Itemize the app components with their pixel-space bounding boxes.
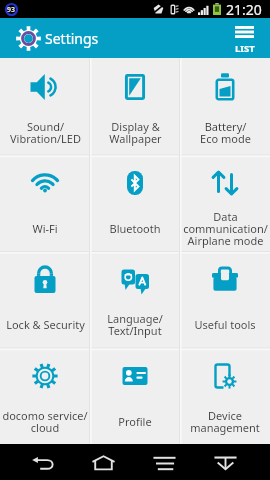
- button[interactable]: Display & Wallpaper: [90, 58, 180, 154]
- staticText: docomo service/ cloud: [2, 408, 88, 435]
- button[interactable]: Home: [73, 444, 134, 480]
- staticText: Settings: [45, 29, 99, 48]
- staticText: Language/ Text/Input: [107, 311, 163, 338]
- button[interactable]: Lock & Security: [0, 250, 90, 347]
- staticText: Sound/ Vibration/LED: [10, 119, 81, 146]
- button[interactable]: docomo service/ cloud: [0, 347, 90, 444]
- button[interactable]: Bluetooth: [90, 154, 180, 250]
- staticText: Lock & Security: [6, 317, 85, 332]
- button[interactable]: Settings: [16, 18, 99, 58]
- staticText: Data communication/ Airplane mode: [183, 209, 268, 248]
- staticText: Display & Wallpaper: [109, 119, 162, 146]
- button[interactable]: Language/ Text/Input: [90, 250, 180, 347]
- staticText: Wi-Fi: [32, 221, 58, 236]
- staticText: Battery/ Eco mode: [200, 119, 251, 146]
- button[interactable]: Recent apps: [134, 444, 195, 480]
- button[interactable]: Wi-Fi: [0, 154, 90, 250]
- button[interactable]: Sound/ Vibration/LED: [0, 58, 90, 154]
- button[interactable]: Profile: [90, 347, 180, 444]
- button[interactable]: Device management: [180, 347, 270, 444]
- button[interactable]: List view: [222, 23, 267, 58]
- staticText: Useful tools: [194, 317, 256, 332]
- staticText: Bluetooth: [109, 221, 161, 236]
- button[interactable]: Hide keyboard: [195, 444, 256, 480]
- staticText: LIST: [235, 42, 255, 55]
- button[interactable]: Back: [12, 444, 73, 480]
- button[interactable]: Data communication/ Airplane mode: [180, 154, 270, 250]
- staticText: Profile: [118, 414, 152, 429]
- staticText: Device management: [190, 408, 260, 435]
- button[interactable]: Battery/ Eco mode: [180, 58, 270, 154]
- button[interactable]: Useful tools: [180, 250, 270, 347]
- staticText: 21:20: [226, 0, 262, 18]
- staticText: 93: [7, 5, 16, 15]
